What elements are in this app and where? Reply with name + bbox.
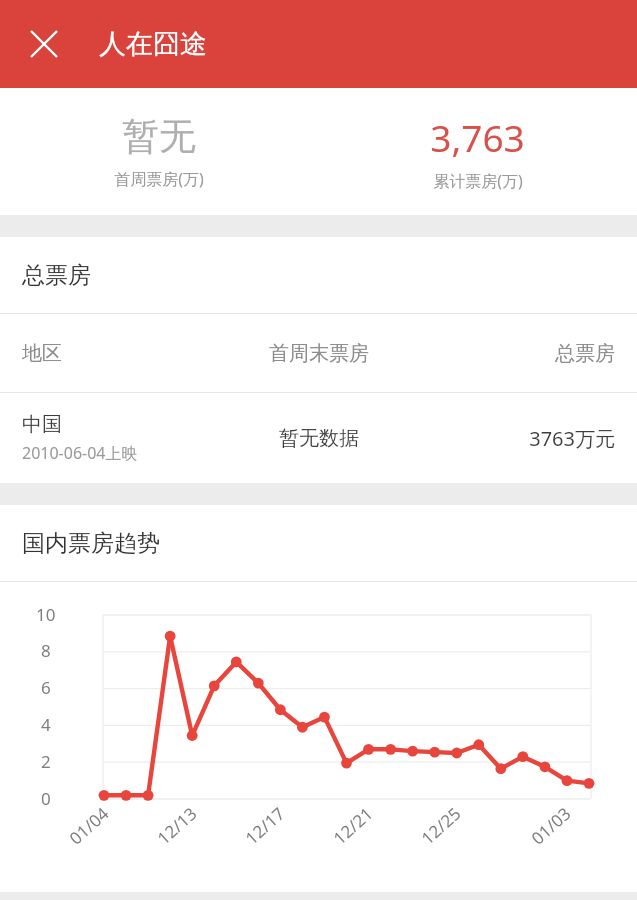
staticText: 01/04 bbox=[64, 802, 114, 849]
staticText: 暂无 bbox=[122, 113, 196, 160]
staticText: 总票房 bbox=[427, 341, 615, 366]
button[interactable]: 暂无 bbox=[0, 88, 318, 215]
staticText: 国内票房趋势 bbox=[22, 529, 160, 558]
button[interactable]: 中国 bbox=[0, 393, 637, 483]
staticText: 累计票房(万) bbox=[433, 170, 523, 192]
staticText: 8 bbox=[41, 639, 51, 662]
staticText: 2 bbox=[41, 750, 51, 773]
staticText: 12/17 bbox=[240, 802, 290, 849]
staticText: 01/03 bbox=[526, 802, 576, 849]
staticText: 6 bbox=[41, 676, 51, 699]
staticText: 10 bbox=[36, 603, 56, 626]
staticText: 暂无数据 bbox=[211, 426, 427, 451]
staticText: 12/21 bbox=[328, 802, 378, 849]
staticText: 3763万元 bbox=[427, 425, 615, 452]
staticText: 总票房 bbox=[22, 261, 91, 290]
staticText: 首周末票房 bbox=[211, 341, 427, 366]
staticText: 2010-06-04上映 bbox=[22, 442, 138, 464]
staticText: 0 bbox=[41, 787, 51, 810]
staticText: 3,763 bbox=[430, 112, 525, 162]
staticText: 人在囧途 bbox=[99, 27, 207, 61]
staticText: 地区 bbox=[22, 341, 211, 366]
staticText: 中国 bbox=[22, 412, 62, 437]
staticText: 首周票房(万) bbox=[114, 168, 204, 190]
staticText: 12/25 bbox=[416, 802, 466, 849]
staticText: 4 bbox=[41, 713, 51, 736]
button[interactable]: 3,763 bbox=[318, 88, 637, 215]
button[interactable]: Close bbox=[16, 16, 72, 72]
staticText: 12/13 bbox=[152, 802, 202, 849]
